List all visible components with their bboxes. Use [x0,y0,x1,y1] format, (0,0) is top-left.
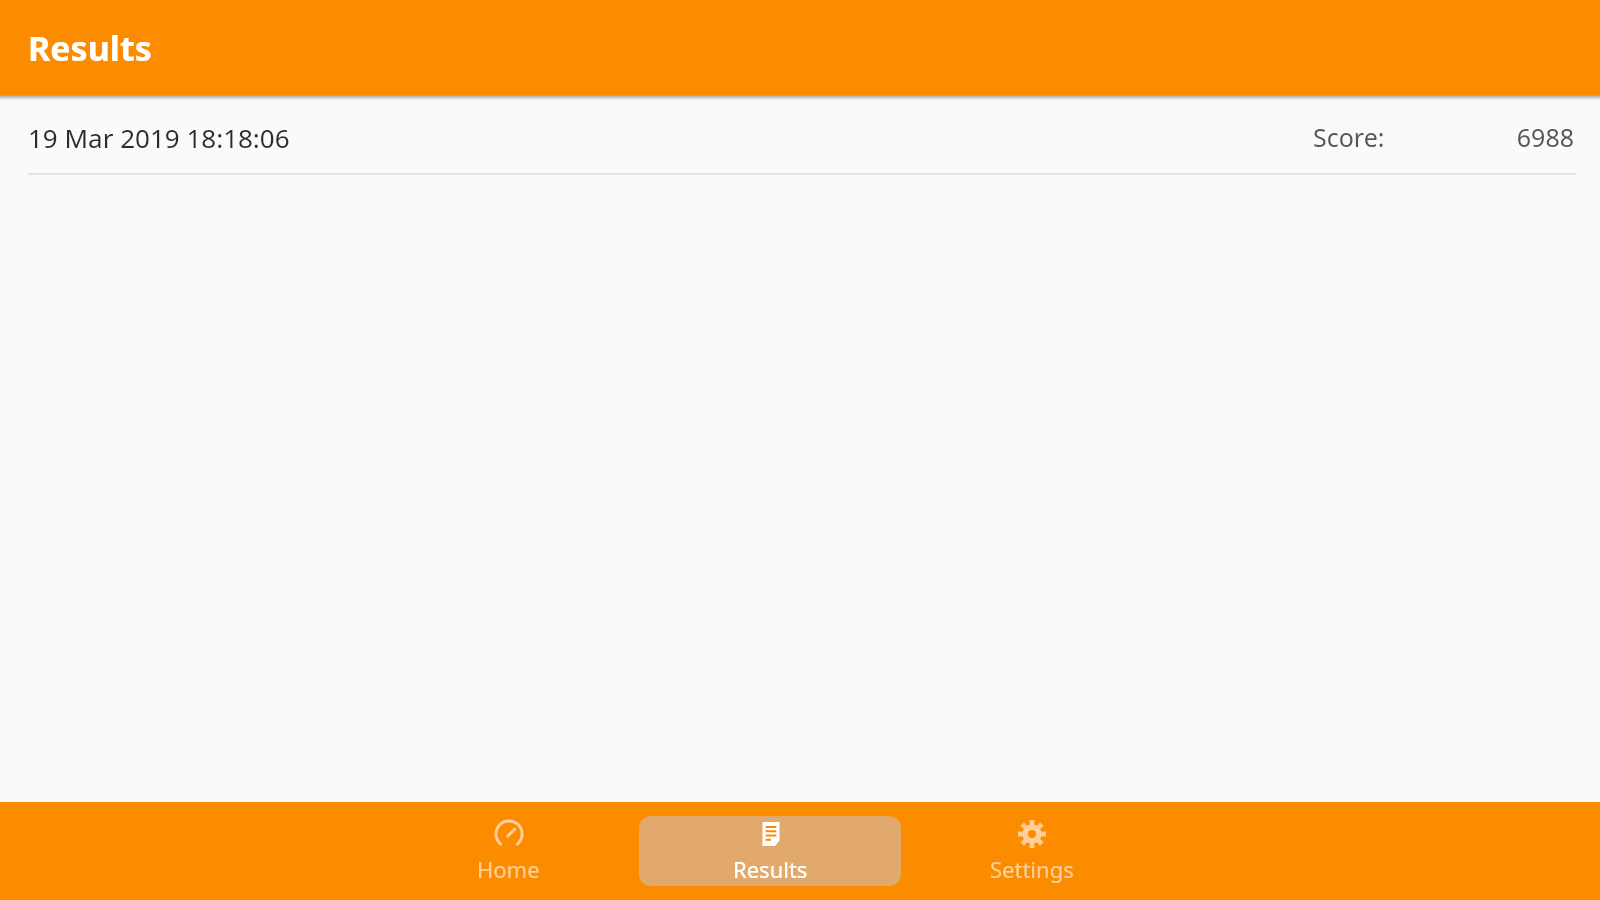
staticText: Results [733,854,808,884]
staticText: 19 Mar 2019 18:18:06 [28,120,290,155]
button[interactable]: Settings [901,816,1163,886]
staticText: Settings [990,854,1074,884]
staticText: Home [477,854,540,884]
staticText: 6988 [1464,120,1574,154]
button[interactable]: Home [377,816,639,886]
staticText: Score: [1313,120,1385,154]
button[interactable]: Results [639,816,901,886]
button[interactable]: 19 Mar 2019 18:18:06 [0,101,1600,175]
staticText: Results [28,25,152,71]
